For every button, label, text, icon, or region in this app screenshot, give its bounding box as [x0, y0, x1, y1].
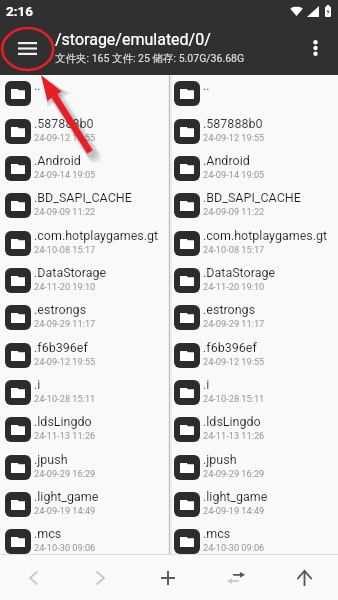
button[interactable]: Back — [0, 555, 67, 600]
button[interactable]: .mcs — [169, 523, 338, 555]
staticText: .mcs — [203, 526, 231, 541]
staticText: 24-11-20 19:10 — [34, 281, 96, 292]
staticText: 24-09-09 11:22 — [34, 206, 96, 217]
button[interactable]: .i — [169, 374, 338, 411]
button[interactable]: .i — [0, 374, 169, 411]
button[interactable]: .light_game — [0, 486, 169, 523]
button[interactable]: .. — [0, 75, 169, 112]
staticText: .com.hotplaygames.gt — [203, 228, 328, 243]
button[interactable]: .jpush — [0, 449, 169, 486]
staticText: 24-09-12 19:55 — [203, 132, 265, 143]
staticText: 24-09-19 14:49 — [203, 505, 265, 516]
staticText: 24-10-28 15:11 — [34, 393, 96, 404]
staticText: 24-09-29 11:17 — [203, 318, 265, 329]
button[interactable]: .light_game — [169, 486, 338, 523]
staticText: 24-11-13 11:26 — [34, 430, 96, 441]
staticText: .mcs — [34, 526, 62, 541]
staticText: .ldsLingdo — [34, 414, 92, 429]
button[interactable]: .f6b396ef — [169, 337, 338, 374]
button[interactable]: .jpush — [169, 449, 338, 486]
button[interactable]: .587888b0 — [0, 113, 169, 150]
staticText: .jpush — [34, 452, 68, 467]
staticText: 24-09-14 19:05 — [203, 169, 265, 180]
button[interactable]: .BD_SAPI_CACHE — [0, 187, 169, 224]
staticText: 24-09-29 11:17 — [34, 318, 96, 329]
staticText: .i — [34, 377, 41, 392]
button[interactable]: .estrongs — [169, 299, 338, 336]
button[interactable]: Transfer — [202, 555, 270, 600]
staticText: 24-10-08 15:17 — [203, 244, 265, 255]
staticText: 24-11-20 19:10 — [203, 281, 265, 292]
button[interactable]: .BD_SAPI_CACHE — [169, 187, 338, 224]
staticText: 文件夹: 165 文件: 25 储存: 5.07G/36.68G — [55, 52, 245, 65]
button[interactable]: .Android — [169, 150, 338, 187]
button[interactable]: .f6b396ef — [0, 337, 169, 374]
button[interactable]: Up — [270, 555, 338, 600]
staticText: .light_game — [203, 489, 268, 504]
staticText: .f6b396ef — [203, 340, 257, 355]
staticText: .. — [203, 78, 210, 93]
staticText: .jpush — [203, 452, 237, 467]
staticText: .light_game — [34, 489, 99, 504]
staticText: .estrongs — [34, 302, 87, 317]
staticText: .Android — [34, 153, 81, 168]
staticText: .BD_SAPI_CACHE — [34, 190, 132, 205]
button[interactable]: Forward — [67, 555, 134, 600]
button[interactable]: Menu — [4, 25, 50, 71]
button[interactable]: .Android — [0, 150, 169, 187]
staticText: 24-10-30 09:06 — [203, 542, 265, 553]
staticText: 24-09-09 11:22 — [203, 206, 265, 217]
staticText: .BD_SAPI_CACHE — [203, 190, 301, 205]
staticText: 24-11-13 11:26 — [203, 430, 265, 441]
staticText: 24-09-12 19:55 — [34, 356, 96, 367]
button[interactable]: .com.hotplaygames.gt — [169, 225, 338, 262]
staticText: .estrongs — [203, 302, 256, 317]
staticText: 24-09-29 16:29 — [34, 468, 96, 479]
staticText: 24-09-14 19:05 — [34, 169, 96, 180]
staticText: .com.hotplaygames.gt — [34, 228, 159, 243]
staticText: 24-10-28 15:11 — [203, 393, 265, 404]
staticText: .Android — [203, 153, 250, 168]
staticText: .DataStorage — [34, 265, 107, 280]
staticText: .f6b396ef — [34, 340, 88, 355]
button[interactable]: .DataStorage — [0, 262, 169, 299]
button[interactable]: More options — [295, 28, 335, 68]
button[interactable]: .estrongs — [0, 299, 169, 336]
staticText: /storage/emulated/0/ — [55, 30, 211, 49]
staticText: 24-09-29 16:29 — [203, 468, 265, 479]
staticText: 24-09-12 19:55 — [34, 132, 96, 143]
staticText: .587888b0 — [203, 116, 263, 131]
staticText: .587888b0 — [34, 116, 94, 131]
staticText: 24-10-08 15:17 — [34, 244, 96, 255]
button[interactable]: .587888b0 — [169, 113, 338, 150]
staticText: 2:16 — [6, 3, 34, 19]
button[interactable]: .. — [169, 75, 338, 112]
staticText: 24-09-12 19:55 — [203, 356, 265, 367]
staticText: .i — [203, 377, 210, 392]
staticText: .DataStorage — [203, 265, 276, 280]
button[interactable]: .com.hotplaygames.gt — [0, 225, 169, 262]
button[interactable]: .DataStorage — [169, 262, 338, 299]
staticText: .ldsLingdo — [203, 414, 261, 429]
button[interactable]: .ldsLingdo — [0, 411, 169, 448]
staticText: .. — [34, 78, 41, 93]
button[interactable]: .ldsLingdo — [169, 411, 338, 448]
staticText: 24-10-30 09:06 — [34, 542, 96, 553]
button[interactable]: New — [134, 555, 202, 600]
staticText: 24-09-19 14:49 — [34, 505, 96, 516]
button[interactable]: .mcs — [0, 523, 169, 555]
